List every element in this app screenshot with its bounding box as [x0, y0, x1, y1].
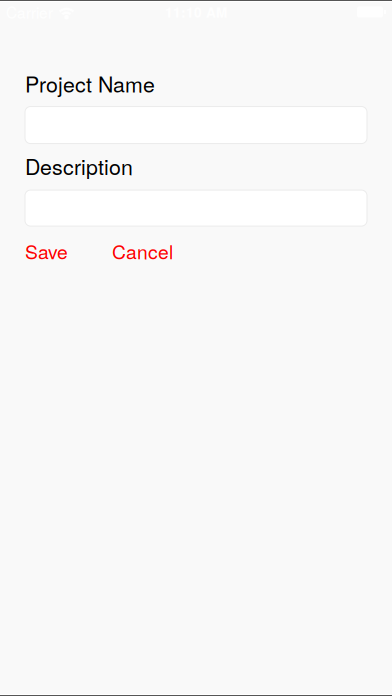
button[interactable]: Project Name: [25, 106, 367, 143]
staticText: Cancel: [112, 237, 173, 265]
staticText: Save: [25, 237, 68, 265]
button[interactable]: Save: [25, 237, 68, 265]
staticText: Description: [25, 150, 133, 181]
staticText: Project Name: [25, 68, 155, 98]
button[interactable]: Cancel: [112, 237, 173, 265]
